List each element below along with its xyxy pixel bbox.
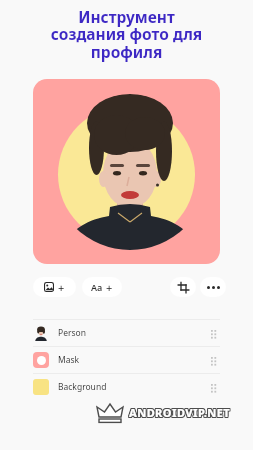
staticText: Инструмент создания фото для профиля: [0, 6, 253, 63]
button[interactable]: Aa: [82, 277, 122, 297]
staticText: ANDROIDVIP.NET: [129, 405, 231, 420]
button[interactable]: [200, 277, 226, 297]
staticText: ANDROIDVIP.NET: [130, 405, 232, 420]
staticText: +: [106, 280, 113, 295]
staticText: +: [58, 280, 65, 295]
staticText: ANDROIDVIP.NET: [130, 404, 232, 419]
button[interactable]: Background: [33, 374, 217, 400]
staticText: Person: [58, 327, 86, 339]
staticText: ANDROIDVIP.NET: [128, 405, 230, 420]
staticText: ANDROIDVIP.NET: [129, 404, 231, 419]
button[interactable]: [170, 277, 196, 297]
staticText: Aa: [91, 281, 103, 293]
staticText: ANDROIDVIP.NET: [129, 406, 231, 421]
staticText: ANDROIDVIP.NET: [128, 404, 230, 419]
staticText: Mask: [58, 354, 80, 366]
button[interactable]: [33, 79, 220, 264]
button[interactable]: +: [33, 277, 76, 297]
staticText: ANDROIDVIP.NET: [128, 406, 230, 421]
staticText: Background: [58, 381, 107, 393]
button[interactable]: Person: [33, 320, 217, 346]
button[interactable]: Mask: [33, 347, 217, 373]
staticText: ANDROIDVIP.NET: [130, 406, 232, 421]
